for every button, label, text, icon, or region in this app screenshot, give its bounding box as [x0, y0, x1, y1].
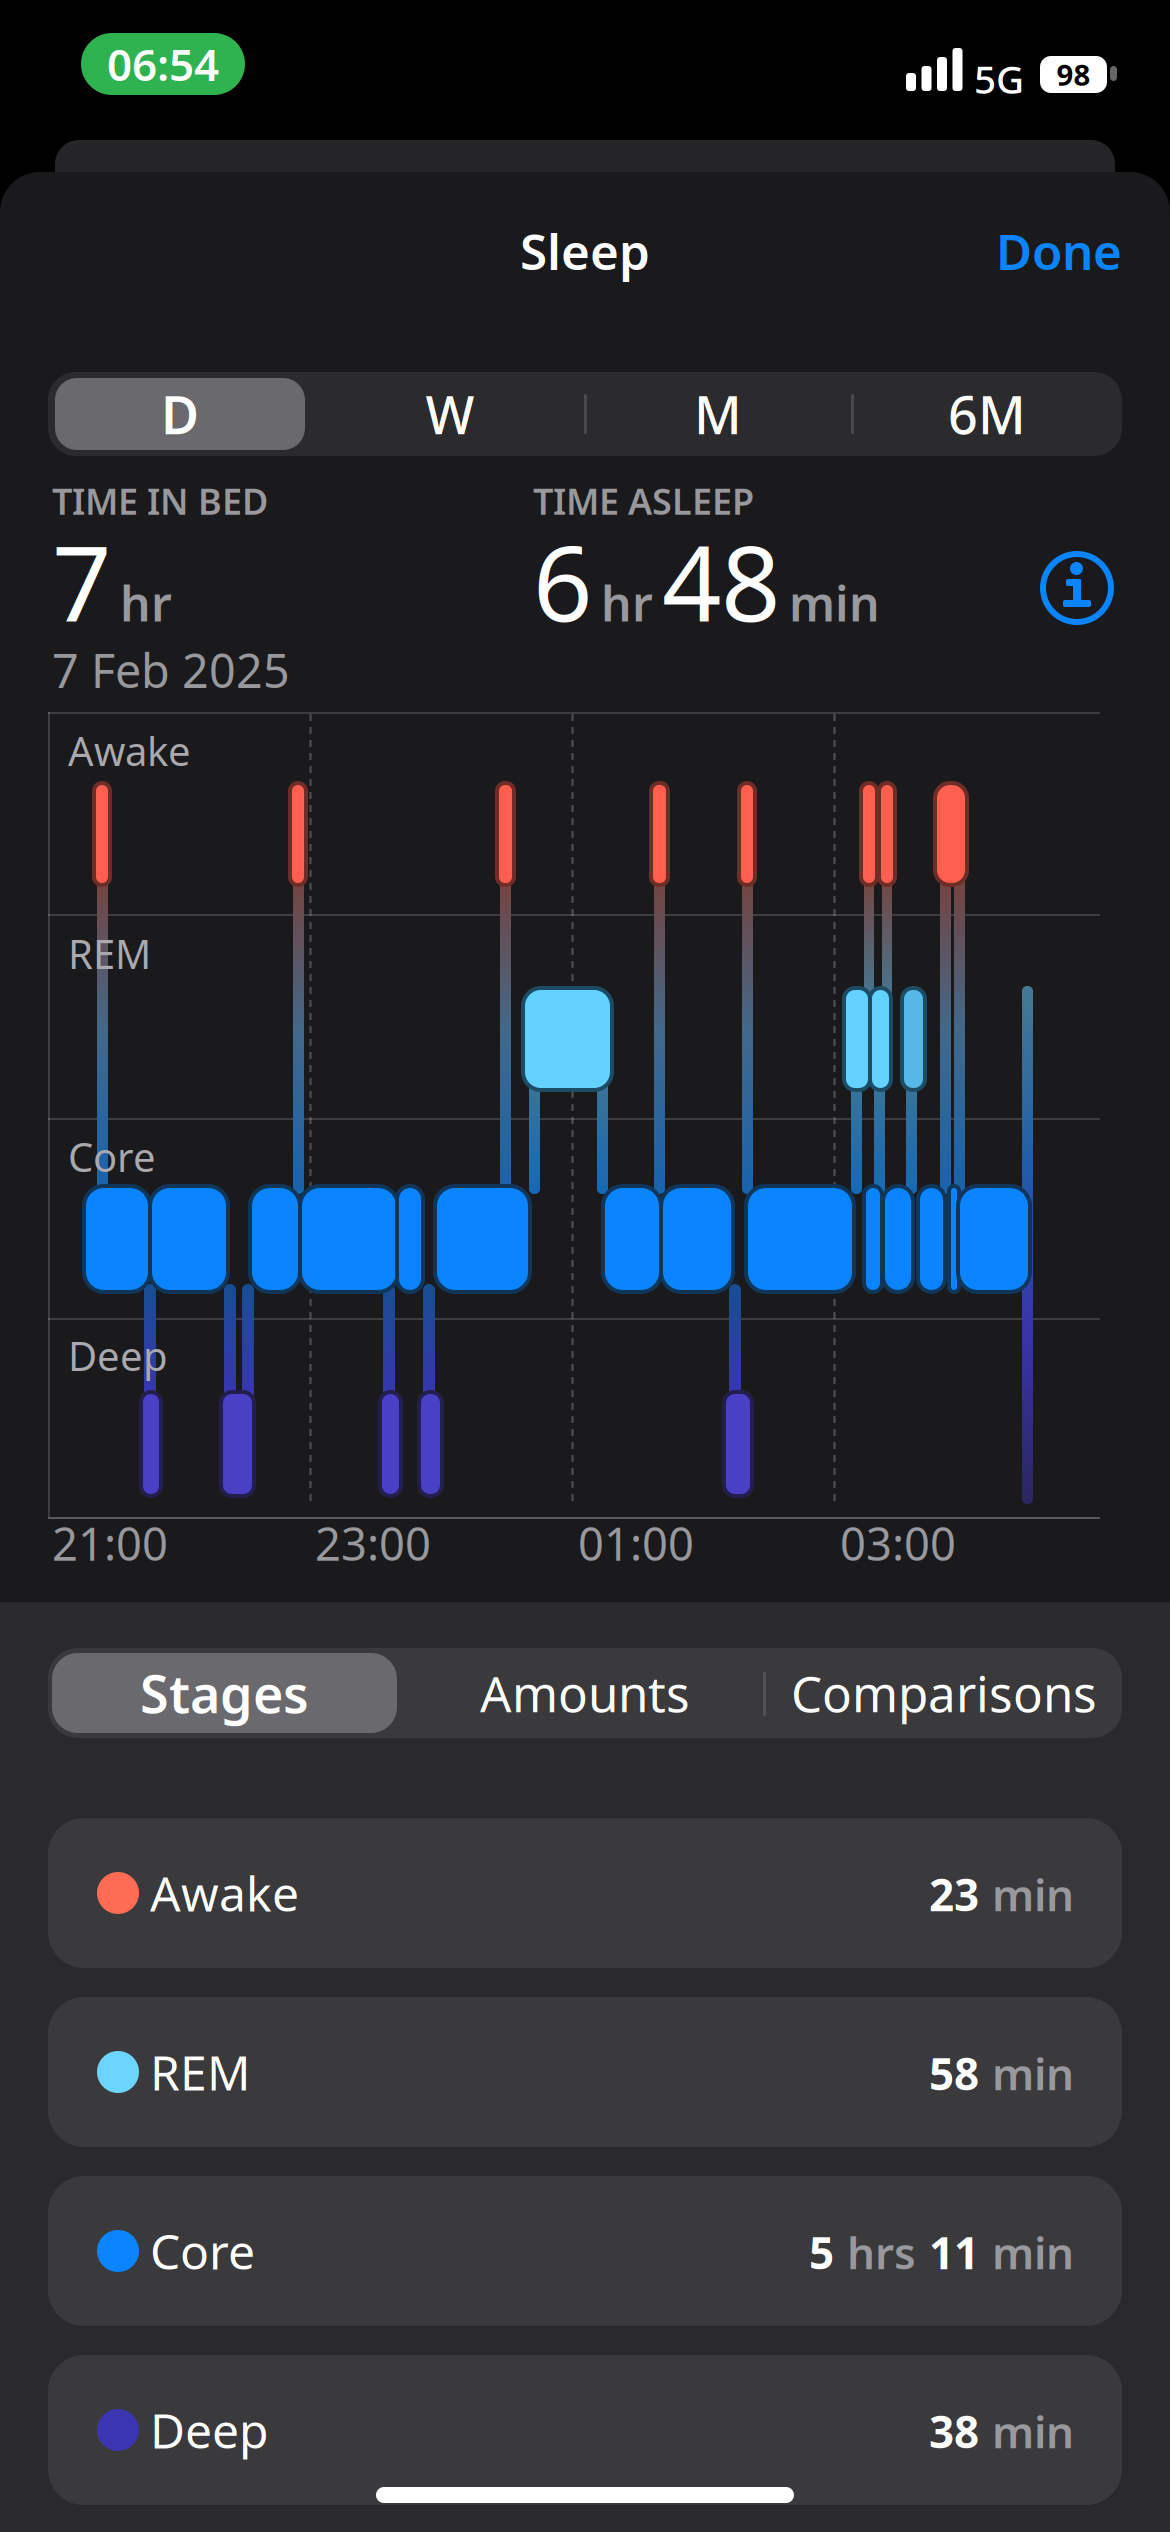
staticText: Core: [68, 1130, 156, 1183]
button[interactable]: Time: [81, 33, 245, 95]
button[interactable]: M: [588, 372, 848, 456]
button[interactable]: 6M: [857, 372, 1117, 456]
staticText: 58: [929, 2044, 979, 2102]
staticText: 11: [929, 2223, 979, 2281]
staticText: REM: [150, 2040, 251, 2104]
button[interactable]: Deep: [48, 2355, 1122, 2505]
staticText: TIME ASLEEP: [533, 477, 754, 525]
staticText: min: [992, 1865, 1074, 1923]
staticText: Deep: [150, 2398, 269, 2462]
staticText: M: [694, 379, 742, 449]
staticText: W: [425, 379, 474, 449]
button[interactable]: Info: [1043, 554, 1111, 622]
staticText: 48: [662, 512, 780, 650]
staticText: TIME IN BED: [52, 477, 268, 525]
staticText: 6M: [948, 379, 1026, 449]
staticText: Core: [150, 2219, 255, 2283]
staticText: Stages: [140, 1658, 309, 1728]
staticText: 7: [52, 512, 111, 650]
staticText: hr: [601, 571, 653, 635]
button[interactable]: Done: [996, 218, 1122, 283]
staticText: 03:00: [840, 1513, 956, 1573]
staticText: 23:00: [315, 1513, 431, 1573]
staticText: Deep: [68, 1329, 168, 1382]
staticText: 5G: [974, 53, 1024, 104]
staticText: 38: [929, 2402, 979, 2460]
staticText: Awake: [68, 724, 191, 777]
staticText: min: [992, 2402, 1074, 2460]
staticText: REM: [68, 927, 151, 980]
staticText: Done: [996, 218, 1122, 283]
button[interactable]: Awake: [48, 1818, 1122, 1968]
staticText: 06:54: [107, 35, 219, 93]
staticText: hrs: [847, 2223, 916, 2281]
staticText: min: [992, 2044, 1074, 2102]
staticText: 23: [929, 1865, 979, 1923]
staticText: Amounts: [480, 1660, 690, 1726]
button[interactable]: Amounts: [420, 1648, 750, 1738]
button[interactable]: Stages: [52, 1653, 397, 1733]
button[interactable]: Core: [48, 2176, 1122, 2326]
staticText: min: [992, 2223, 1074, 2281]
staticText: Sleep: [520, 218, 650, 283]
staticText: 6: [533, 512, 592, 650]
staticText: 98: [1056, 55, 1090, 94]
staticText: 5: [809, 2223, 834, 2281]
staticText: 21:00: [52, 1513, 168, 1573]
staticText: D: [161, 379, 199, 449]
staticText: min: [789, 571, 880, 635]
button[interactable]: D: [55, 378, 305, 450]
button[interactable]: REM: [48, 1997, 1122, 2147]
staticText: Awake: [150, 1861, 299, 1925]
button[interactable]: Comparisons: [766, 1648, 1122, 1738]
staticText: 7 Feb 2025: [52, 639, 290, 701]
staticText: 01:00: [578, 1513, 694, 1573]
staticText: hr: [120, 571, 172, 635]
staticText: Comparisons: [791, 1660, 1097, 1726]
button[interactable]: W: [320, 372, 580, 456]
